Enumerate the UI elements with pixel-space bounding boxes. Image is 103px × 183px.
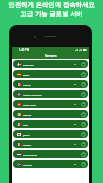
staticText: 고급 기능 글로벌 서버: [0, 9, 103, 18]
button[interactable]: Denmark: [13, 60, 88, 68]
other: Connect: [81, 132, 86, 137]
other: Connect: [81, 142, 86, 147]
staticText: France: [23, 83, 31, 86]
button[interactable]: Hong Kong: [13, 100, 88, 108]
other: Connect: [81, 102, 86, 107]
staticText: Japan: [23, 133, 30, 136]
button[interactable]: Norway: [13, 160, 88, 168]
button[interactable]: Mexico: [13, 140, 88, 148]
staticText: Servers: [45, 54, 57, 58]
staticText: Netherlands: [23, 153, 38, 156]
other: Connect: [81, 72, 86, 77]
staticText: Hong Kong: [23, 103, 36, 106]
staticText: Ireland: [23, 113, 32, 116]
staticText: United Kingdom: [23, 93, 42, 96]
other: Connect: [81, 122, 86, 127]
button[interactable]: Ireland: [13, 110, 88, 118]
staticText: Spain: [23, 73, 30, 76]
other: Connect: [81, 162, 86, 167]
button[interactable]: France: [13, 80, 88, 88]
staticText: 1:40 PM: [19, 48, 30, 52]
staticText: Norway: [23, 163, 32, 166]
button[interactable]: Japan: [13, 130, 88, 138]
other: Connect: [81, 82, 86, 87]
other: Connect: [81, 112, 86, 117]
button[interactable]: United Kingdom: [13, 90, 88, 98]
staticText: Denmark: [23, 63, 34, 66]
button[interactable]: Netherlands: [13, 150, 88, 158]
other: Connect: [81, 152, 86, 157]
other: Connect: [81, 92, 86, 97]
staticText: Italy: [23, 123, 29, 126]
button[interactable]: Italy: [13, 120, 88, 128]
staticText: Mexico: [23, 143, 32, 146]
other: Connect: [81, 62, 86, 67]
staticText: 안전하게 온라인에 접속하세요: [0, 0, 103, 9]
button[interactable]: Spain: [13, 70, 88, 78]
